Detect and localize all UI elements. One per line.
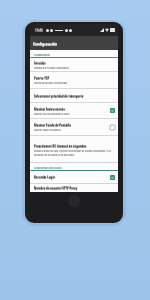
staticText: Puerto del servidor Proactivanet — [34, 82, 68, 85]
staticText: Tiempo a partir del cual la acción Proac… — [34, 149, 115, 155]
staticText: Proactivanet RC timeout en segundos — [34, 145, 87, 149]
staticText: Recordar Login — [34, 176, 56, 180]
staticText: Credenciales de Usuario — [34, 166, 62, 169]
staticText: Nombre de usuario HTTP Proxy — [34, 187, 78, 191]
staticText: Nombre del servidor Proactivanet — [34, 66, 69, 69]
staticText: Configuración — [33, 42, 58, 47]
staticText: Configuración — [34, 54, 51, 57]
button[interactable]: Servidor — [30, 58, 118, 71]
staticText: 13:46 — [35, 29, 43, 33]
staticText: Proactivanet RC timeout en segundos — [34, 144, 87, 148]
staticText: Mostrar fondo de pantalla — [34, 129, 61, 132]
staticText: Puerto TCP — [34, 76, 50, 80]
button[interactable]: Recordar Login — [30, 171, 118, 183]
button[interactable]: Nombre de usuario HTTP Proxy — [30, 184, 118, 192]
staticText: Puerto del servidor Proactivanet — [34, 81, 68, 84]
staticText: Nombre de usuario HTTP Proxy — [34, 186, 78, 190]
staticText: Seleccionar prioridad de transporte — [34, 95, 84, 99]
staticText: Puerto TCP — [34, 77, 50, 81]
staticText: Configuración — [34, 53, 51, 56]
button[interactable]: Puerto TCP — [30, 72, 118, 88]
staticText: Tiempo a partir del cual la acción Proac… — [34, 150, 115, 156]
staticText: Nombre del servidor Proactivanet — [34, 67, 69, 70]
staticText: Seleccionar prioridad de transporte — [34, 94, 84, 98]
staticText: Recordar Login — [34, 175, 56, 179]
staticText: 13:46 — [35, 28, 43, 32]
staticText: Mostrar Fondo de Pantalla — [34, 124, 71, 128]
staticText: Mostrar Instrucciones — [34, 108, 65, 112]
staticText: Mostrar Fondo de Pantalla — [34, 123, 71, 127]
staticText: Mostrar Instrucciones — [34, 107, 65, 111]
staticText: Servidor — [34, 61, 46, 65]
button[interactable]: Mostrar Instrucciones — [30, 103, 118, 118]
button[interactable]: Mostrar Fondo de Pantalla — [30, 119, 118, 135]
staticText: Mostrar info herramientas al inicio — [34, 112, 70, 115]
staticText: Credenciales de Usuario — [34, 167, 62, 170]
staticText: Configuración — [33, 41, 58, 46]
staticText: Servidor — [34, 62, 46, 66]
staticText: Mostrar fondo de pantalla — [34, 128, 61, 131]
button[interactable]: Proactivanet RC timeout en segundos — [30, 136, 118, 162]
staticText: Mostrar info herramientas al inicio — [34, 113, 70, 116]
button[interactable]: Seleccionar prioridad de transporte — [30, 89, 118, 102]
